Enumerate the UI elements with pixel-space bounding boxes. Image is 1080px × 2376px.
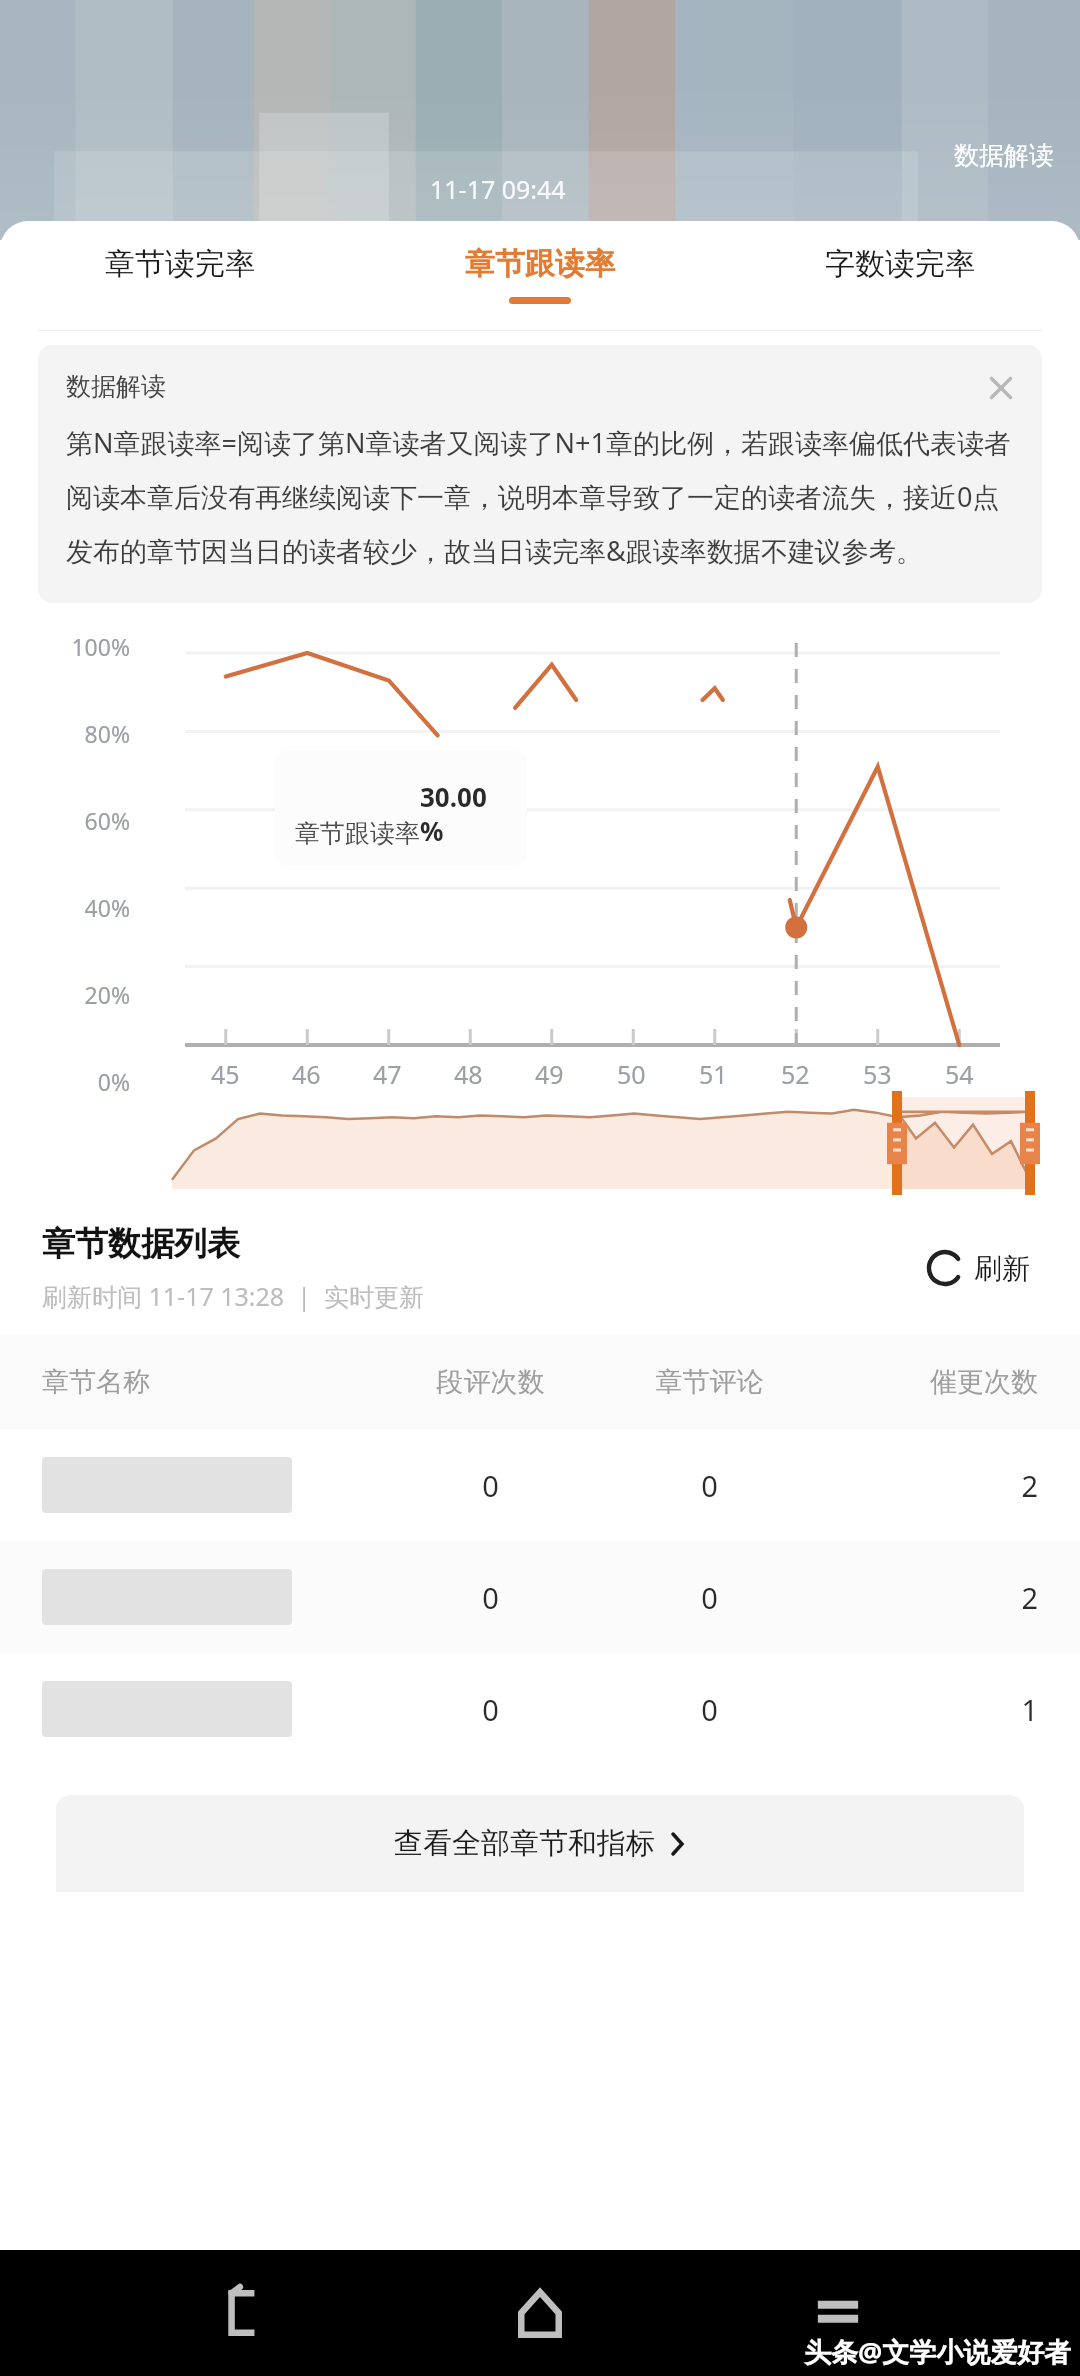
staticText: 章节跟读率 <box>295 818 420 849</box>
staticText: 20% <box>84 979 130 1010</box>
staticText: 49 <box>535 1057 564 1091</box>
button[interactable]: 0 <box>0 1429 1080 1541</box>
button[interactable]: 0 <box>0 1653 1080 1765</box>
staticText: 45 <box>211 1057 240 1091</box>
staticText: 100% <box>71 631 130 662</box>
staticText: 51 <box>699 1057 728 1091</box>
staticText: 52 <box>781 1057 810 1091</box>
staticText: 48 <box>454 1057 483 1091</box>
staticText: 0 <box>600 1578 819 1617</box>
staticText: 30.00% <box>420 779 507 849</box>
staticText: 第N章跟读率=阅读了第N章读者又阅读了N+1章的比例，若跟读率偏低代表读者阅读本… <box>66 424 1018 569</box>
staticText: 催更次数 <box>819 1365 1038 1399</box>
staticText: 章节读完率 <box>105 245 255 283</box>
staticText: 53 <box>863 1057 892 1091</box>
button[interactable]: 字数读完率 <box>720 221 1080 331</box>
button[interactable]: 章节读完率 <box>0 221 360 331</box>
button[interactable]: 刷新 <box>918 1241 1038 1295</box>
staticText: 章节数据列表 <box>42 1223 240 1265</box>
staticText: 0 <box>381 1466 600 1505</box>
staticText: 章节跟读率 <box>465 245 615 283</box>
staticText: 查看全部章节和指标 <box>394 1825 655 1862</box>
staticText: 2 <box>819 1578 1038 1617</box>
staticText: 46 <box>292 1057 321 1091</box>
staticText: 数据解读 <box>954 140 1054 171</box>
staticText: 段评次数 <box>381 1365 600 1399</box>
button[interactable]: 0 <box>0 1541 1080 1653</box>
button[interactable]: 关闭 <box>984 371 1018 405</box>
button[interactable]: Recents <box>783 2258 893 2368</box>
button[interactable] <box>172 1097 1030 1189</box>
staticText: 54 <box>945 1057 974 1091</box>
staticText: 头条@文学小说爱好者 <box>804 2333 1072 2370</box>
staticText: 0% <box>97 1066 130 1097</box>
staticText: 数据解读 <box>66 371 166 402</box>
staticText: 刷新时间 11-17 13:28 | 实时更新 <box>42 1279 424 1313</box>
staticText: 0 <box>381 1578 600 1617</box>
staticText: 章节评论 <box>600 1365 819 1399</box>
staticText: 0 <box>381 1690 600 1729</box>
staticText: 0 <box>600 1690 819 1729</box>
staticText: 0 <box>600 1466 819 1505</box>
button[interactable]: Home <box>485 2258 595 2368</box>
button[interactable]: 查看全部章节和指标 <box>56 1795 1024 1892</box>
staticText: 章节名称 <box>42 1365 381 1399</box>
staticText: 刷新 <box>974 1251 1030 1286</box>
staticText: 字数读完率 <box>825 245 975 283</box>
staticText: 50 <box>617 1057 646 1091</box>
staticText: 60% <box>84 805 130 836</box>
staticText: 80% <box>84 718 130 749</box>
staticText: 1 <box>819 1690 1038 1729</box>
staticText: 40% <box>84 892 130 923</box>
button[interactable]: 章节跟读率 <box>360 221 720 331</box>
staticText: 2 <box>819 1466 1038 1505</box>
staticText: 11-17 09:44 <box>430 172 566 206</box>
button[interactable]: Back <box>188 2258 298 2368</box>
staticText: 47 <box>373 1057 402 1091</box>
